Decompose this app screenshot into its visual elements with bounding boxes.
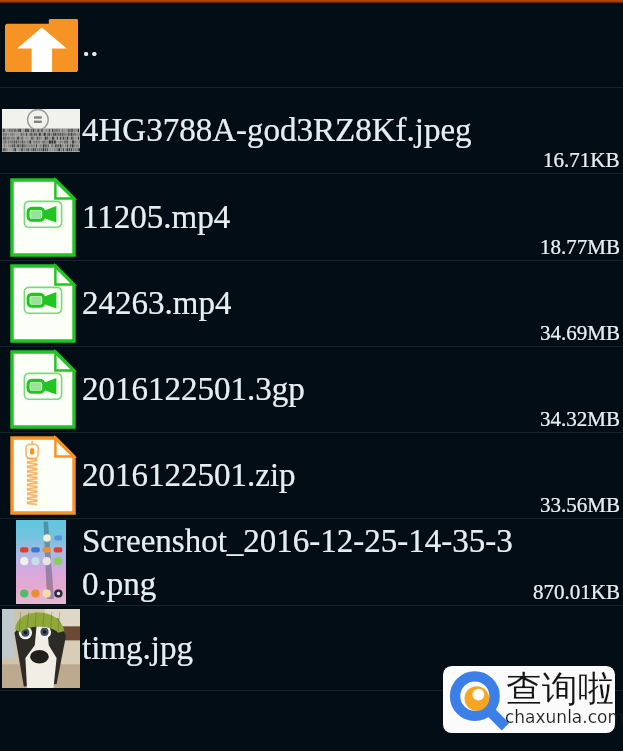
staticText: 2016122501.zip (82, 457, 524, 494)
staticText: 16.71KB (543, 148, 620, 171)
other: Photo preview (0, 609, 82, 688)
other: Screenshot preview (0, 520, 82, 604)
other: Video file (0, 266, 82, 341)
staticText: timg.jpg (82, 630, 524, 667)
other: Video file (0, 180, 82, 255)
button[interactable]: Screenshot preview (0, 519, 623, 605)
staticText: 870.01KB (533, 580, 620, 603)
staticText: 24263.mp4 (82, 285, 524, 322)
staticText: 18.77MB (540, 235, 620, 258)
button[interactable]: Video file (0, 347, 623, 432)
other: Parent folder (0, 19, 82, 72)
other: Archive file (0, 438, 82, 513)
staticText: 查询啦 (506, 666, 614, 711)
button[interactable]: Photo preview (0, 606, 623, 690)
staticText: 4HG3788A-god3RZ8Kf.jpeg (82, 112, 524, 149)
button[interactable]: Video file (0, 174, 623, 260)
staticText: 34.32MB (540, 407, 620, 430)
other: Video file (0, 352, 82, 427)
button[interactable]: Image preview (0, 88, 623, 173)
staticText: 34.69MB (540, 321, 620, 344)
staticText: 2016122501.3gp (82, 371, 524, 408)
staticText: chaxunla.com (505, 707, 623, 727)
staticText: 11205.mp4 (82, 199, 524, 236)
staticText: 33.56MB (540, 493, 620, 516)
staticText: .. (82, 27, 99, 64)
button[interactable]: Parent folder (0, 3, 623, 87)
staticText: Screenshot_2016-12-25-14-35-30.png (82, 523, 524, 602)
other: Image preview (0, 109, 82, 152)
button[interactable]: Video file (0, 261, 623, 346)
button[interactable]: Archive file (0, 433, 623, 518)
